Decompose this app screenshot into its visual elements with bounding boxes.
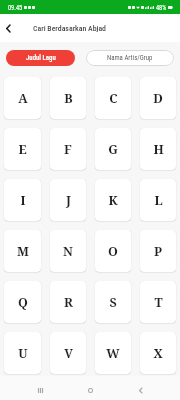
button[interactable]: M [4, 230, 41, 272]
button[interactable]: N [50, 230, 86, 272]
button[interactable]: S [95, 281, 131, 323]
button[interactable]: I [4, 179, 41, 221]
staticText: 09.45 [8, 4, 23, 11]
button[interactable]: U [4, 332, 41, 374]
button[interactable]: V [50, 332, 86, 374]
button[interactable]: Home [77, 380, 103, 400]
staticText: M [17, 243, 29, 260]
button[interactable]: W [95, 332, 131, 374]
staticText: 48% [156, 4, 167, 11]
staticText: X [153, 345, 163, 362]
button[interactable]: Judul Lagu [6, 50, 75, 66]
button[interactable]: O [95, 230, 131, 272]
staticText: G [108, 141, 118, 158]
staticText: C [109, 90, 118, 107]
staticText: U [18, 345, 28, 362]
staticText: W [106, 345, 120, 362]
staticText: T [154, 294, 163, 311]
button[interactable]: Nama Artis/Grup [86, 50, 174, 66]
staticText: N [63, 243, 73, 260]
staticText: B [64, 90, 73, 107]
staticText: J [66, 192, 71, 209]
staticText: Q [18, 294, 28, 311]
button[interactable]: X [140, 332, 176, 374]
button[interactable]: B [50, 77, 86, 119]
button[interactable]: Back [0, 14, 15, 42]
button[interactable]: C [95, 77, 131, 119]
button[interactable]: T [140, 281, 176, 323]
staticText: D [153, 90, 163, 107]
button[interactable]: L [140, 179, 176, 221]
button[interactable]: Q [4, 281, 41, 323]
button[interactable]: P [140, 230, 176, 272]
button[interactable]: J [50, 179, 86, 221]
staticText: L [154, 192, 163, 209]
staticText: Cari Berdasarkan Abjad [33, 24, 106, 33]
staticText: S [109, 294, 117, 311]
button[interactable]: Back [127, 380, 153, 400]
staticText: V [64, 345, 73, 362]
staticText: A [18, 90, 28, 107]
staticText: I [20, 192, 26, 209]
staticText: R [64, 294, 73, 311]
staticText: H [153, 141, 164, 158]
button[interactable]: G [95, 128, 131, 170]
staticText: K [108, 192, 118, 209]
button[interactable]: E [4, 128, 41, 170]
staticText: O [108, 243, 118, 260]
staticText: F [64, 141, 72, 158]
button[interactable]: H [140, 128, 176, 170]
button[interactable]: K [95, 179, 131, 221]
staticText: Judul Lagu [26, 54, 56, 62]
staticText: E [18, 141, 27, 158]
button[interactable]: D [140, 77, 176, 119]
button[interactable]: R [50, 281, 86, 323]
button[interactable]: F [50, 128, 86, 170]
button[interactable]: A [4, 77, 41, 119]
staticText: P [154, 243, 162, 260]
button[interactable]: Recent apps [27, 380, 53, 400]
staticText: Nama Artis/Grup [107, 54, 153, 62]
